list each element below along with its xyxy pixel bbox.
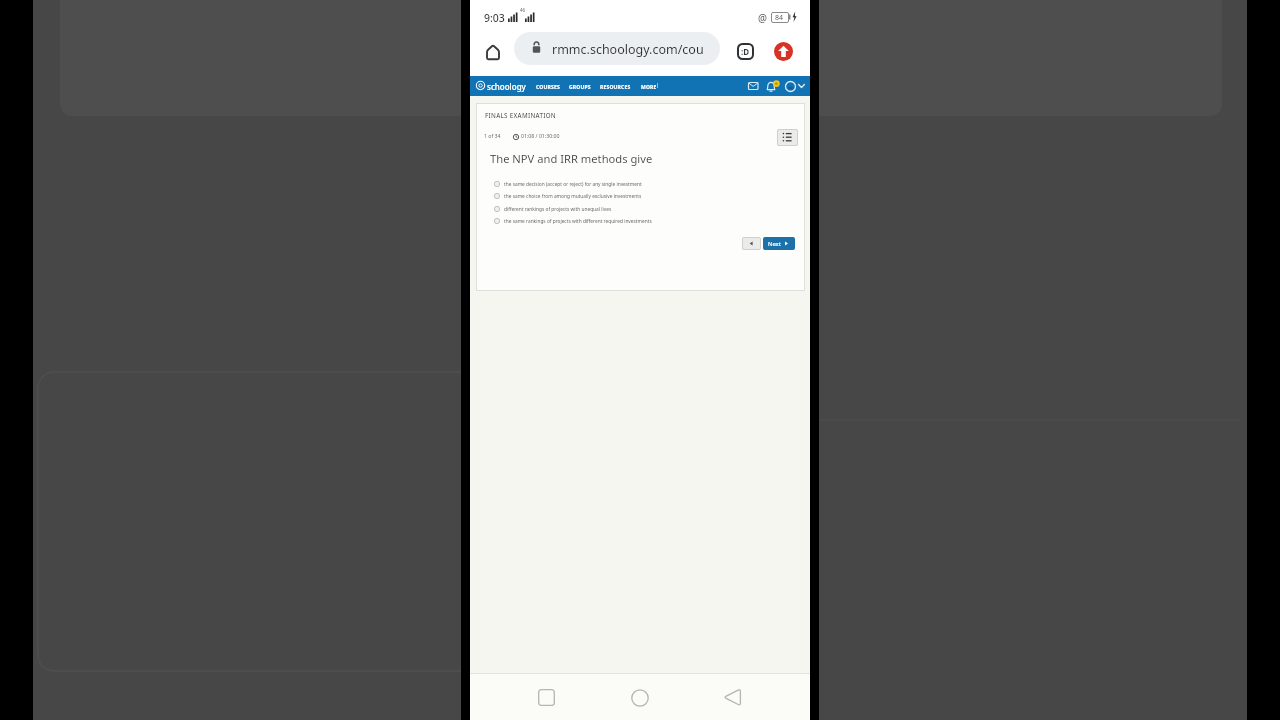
staticText: COURSES bbox=[536, 84, 560, 91]
button[interactable]: the same decision (accept or reject) for… bbox=[494, 180, 694, 189]
staticText: @ bbox=[758, 11, 767, 25]
button[interactable] bbox=[766, 81, 780, 93]
button[interactable]: rmmc.schoology.com/cou bbox=[514, 32, 720, 65]
button[interactable] bbox=[748, 82, 759, 90]
button[interactable]: MORE bbox=[639, 78, 659, 94]
button[interactable]: Next bbox=[763, 237, 795, 250]
button[interactable] bbox=[742, 237, 761, 250]
button[interactable]: the same choice from among mutually excl… bbox=[494, 192, 694, 201]
staticText: 84 bbox=[775, 13, 784, 23]
button[interactable] bbox=[631, 689, 649, 707]
staticText: The NPV and IRR methods give bbox=[490, 151, 653, 166]
button[interactable] bbox=[722, 688, 742, 706]
button[interactable]: GROUPS bbox=[567, 78, 591, 94]
staticText: the same choice from among mutually excl… bbox=[504, 193, 642, 200]
button[interactable]: COURSES bbox=[534, 78, 560, 94]
staticText: FINALS EXAMINATION bbox=[485, 111, 556, 119]
button[interactable]: the same rankings of projects with diffe… bbox=[494, 217, 694, 226]
staticText: the same decision (accept or reject) for… bbox=[504, 181, 642, 188]
staticText: | bbox=[656, 81, 660, 88]
staticText: 46 bbox=[520, 7, 526, 13]
staticText: rmmc.schoology.com/cou bbox=[552, 41, 704, 58]
button[interactable] bbox=[777, 129, 798, 146]
staticText: 01:08 / 01:30:00 bbox=[521, 132, 560, 139]
staticText: RESOURCES bbox=[600, 84, 631, 91]
staticText: MORE bbox=[641, 84, 657, 91]
staticText: Next bbox=[768, 240, 781, 248]
staticText: the same rankings of projects with diffe… bbox=[504, 218, 652, 225]
button[interactable] bbox=[785, 81, 796, 92]
staticText: 1 of 34 bbox=[484, 132, 501, 139]
staticText: GROUPS bbox=[569, 84, 591, 91]
button[interactable]: RESOURCES bbox=[598, 78, 630, 94]
button[interactable] bbox=[774, 42, 793, 61]
staticText: 9:03 bbox=[484, 11, 505, 25]
staticText: schoology bbox=[487, 81, 526, 92]
button[interactable] bbox=[484, 43, 502, 61]
staticText: :D bbox=[741, 46, 750, 57]
button[interactable]: different rankings of projects with uneq… bbox=[494, 205, 694, 214]
button[interactable]: :D bbox=[737, 43, 754, 60]
staticText: different rankings of projects with uneq… bbox=[504, 206, 612, 213]
button[interactable] bbox=[538, 689, 555, 706]
